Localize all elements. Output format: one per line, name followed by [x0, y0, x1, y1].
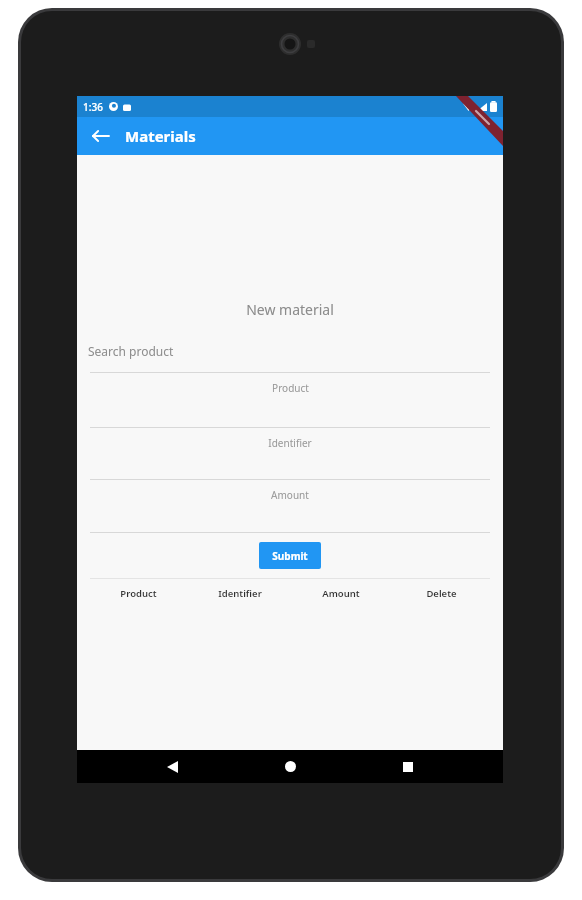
button[interactable]: Product [88, 579, 189, 607]
button[interactable]: Product [77, 373, 503, 427]
staticText: Amount [271, 488, 309, 502]
staticText: Identifier [218, 587, 262, 600]
button[interactable]: Identifier [189, 579, 290, 607]
button[interactable]: Back [83, 119, 117, 153]
staticText: Materials [125, 126, 196, 146]
staticText: Delete [426, 587, 457, 600]
staticText: Search product [88, 343, 174, 359]
staticText: 1:36 [83, 100, 103, 114]
button[interactable]: Identifier [77, 428, 503, 479]
button[interactable]: Delete [391, 579, 492, 607]
staticText: New material [246, 300, 334, 319]
staticText: Amount [322, 587, 360, 600]
staticText: Identifier [268, 436, 312, 450]
button[interactable]: Submit [259, 542, 321, 569]
staticText: Product [120, 587, 157, 600]
button[interactable]: Back [149, 750, 195, 783]
button[interactable]: Home [267, 750, 313, 783]
button[interactable]: Amount [290, 579, 391, 607]
button[interactable]: Recent apps [385, 750, 431, 783]
button[interactable]: Amount [77, 480, 503, 532]
staticText: Product [272, 381, 309, 395]
button[interactable]: Search product [77, 340, 503, 361]
staticText: Submit [272, 549, 308, 563]
